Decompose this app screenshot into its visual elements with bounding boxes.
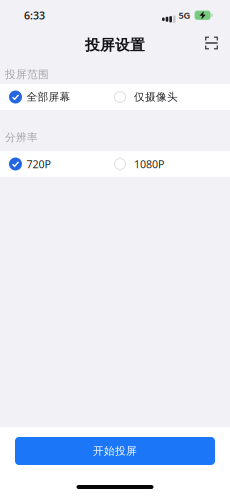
staticText: 全部屏幕	[26, 90, 70, 103]
button[interactable]: 扫码投屏	[205, 36, 218, 49]
staticText: 720P	[26, 157, 50, 171]
staticText: 1080P	[134, 157, 164, 171]
staticText: 投屏设置	[85, 36, 145, 54]
button[interactable]: 全部屏幕	[0, 90, 70, 103]
staticText: 分辨率	[5, 131, 38, 144]
button[interactable]: 1080P	[114, 157, 164, 171]
button[interactable]: 仅摄像头	[114, 90, 178, 103]
staticText: 投屏范围	[5, 68, 49, 81]
staticText: 6:33	[24, 8, 45, 22]
button[interactable]: 720P	[0, 157, 50, 171]
button[interactable]: 开始投屏	[15, 437, 215, 465]
staticText: 5G	[179, 9, 191, 21]
staticText: 仅摄像头	[134, 90, 178, 103]
staticText: 开始投屏	[93, 444, 137, 457]
